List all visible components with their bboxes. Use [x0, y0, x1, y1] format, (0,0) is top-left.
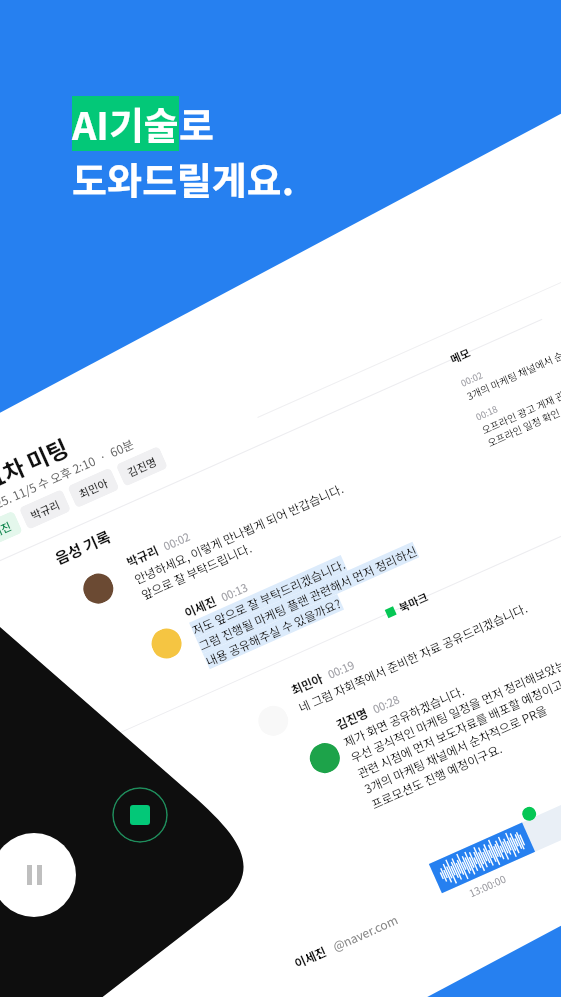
staticText: 2025. 11/5 수 오후 2:10 · 60분 — [0, 435, 136, 517]
staticText: 최민아 — [76, 474, 111, 501]
staticText: 최민아 — [288, 669, 326, 698]
staticText: 음성 기록 — [51, 525, 114, 569]
staticText: 그럼 진행될 마케팅 플랜 관련해서 먼저 정리하신 — [196, 542, 419, 654]
staticText: 저도 앞으로 잘 부탁드리겠습니다. — [189, 555, 348, 638]
button[interactable]: 김진명 — [333, 611, 561, 812]
staticText: 13:00:00 — [466, 871, 508, 899]
staticText: 00:18 — [474, 402, 500, 423]
staticText: 이세진 — [291, 942, 329, 971]
button[interactable]: Pause — [0, 833, 76, 917]
staticText: 3개의 마케팅 채널에서 순차적으로 PR을 — [361, 700, 550, 797]
staticText: 00:28 — [370, 690, 402, 716]
staticText: 로 — [179, 96, 214, 151]
staticText: 프로모션도 진행 예정이구요. — [368, 739, 505, 812]
staticText: 앞으로 잘 부탁드립니다. — [138, 538, 255, 603]
staticText: 오프라인 광고 게재 관련 — [479, 383, 561, 436]
button[interactable]: 이세진 — [0, 510, 23, 551]
staticText: 00:19 — [325, 656, 357, 682]
button[interactable]: 최민아 — [67, 467, 120, 508]
staticText: 네 그럼 자회쪽에서 준비한 자료 공유드리겠습니다. — [296, 599, 530, 715]
staticText: 내용 공유해주실 수 있을까요? — [203, 594, 344, 669]
staticText: 00:02 — [459, 368, 485, 390]
staticText: 안녕하세요, 이렇게 만나뵙게 되어 반갑습니다. — [131, 479, 346, 587]
staticText: 박규리 — [28, 496, 62, 523]
button[interactable]: New note — [112, 787, 168, 843]
staticText: 제가 화면 공유하겠습니다. — [341, 681, 467, 750]
staticText: @naver.com — [330, 910, 401, 954]
staticText: 관련 시점에 먼저 보도자료를 배포할 예정이고 — [354, 675, 561, 781]
staticText: 김진명 — [333, 703, 371, 733]
staticText: 도와드릴게요. — [72, 151, 295, 206]
staticText: 이세진 — [0, 517, 14, 545]
staticText: 우선 공식적인 마케팅 일정을 먼저 정리해보았는데요, — [348, 644, 561, 766]
staticText: 3개의 마케팅 채널에서 순차적으로 — [464, 332, 561, 402]
staticText: 박규리 — [124, 540, 162, 570]
staticText: 오프라인 일정 확인 — [485, 404, 561, 449]
button[interactable]: 이세진 — [181, 509, 426, 669]
staticText: 메모 — [447, 344, 473, 367]
staticText: AI기술 — [72, 96, 179, 151]
staticText: 김진명 — [124, 453, 159, 480]
button[interactable]: 박규리 — [19, 489, 71, 530]
staticText: 00:02 — [160, 528, 193, 554]
button[interactable]: 박규리 — [124, 462, 353, 603]
button[interactable]: 최민아 — [288, 581, 530, 715]
staticText: 이세진 — [181, 591, 219, 621]
staticText: 북마크 — [396, 588, 431, 615]
staticText: 스프린트 1차 미팅 — [0, 429, 74, 530]
staticText: 00:13 — [218, 578, 250, 604]
button[interactable]: 김진명 — [115, 446, 168, 487]
